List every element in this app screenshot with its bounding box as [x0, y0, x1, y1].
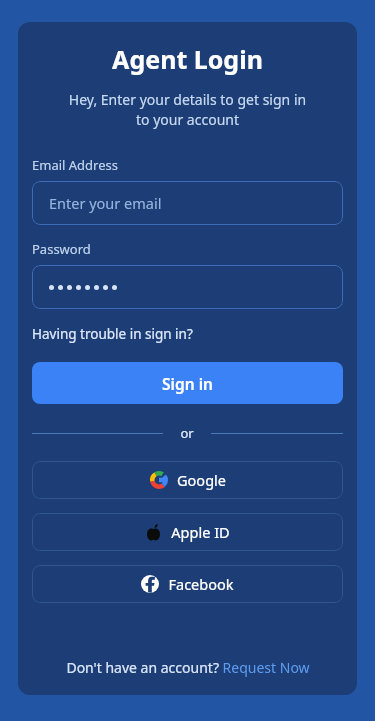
- staticText: Apple ID: [171, 522, 230, 542]
- button[interactable]: Facebook: [32, 565, 343, 603]
- button[interactable]: Enter your email: [32, 181, 343, 225]
- staticText: Sign in: [162, 373, 213, 394]
- staticText: Agent Login: [32, 42, 343, 76]
- button[interactable]: Having trouble in sign in?: [32, 325, 193, 343]
- button[interactable]: [32, 265, 343, 309]
- staticText: Google: [177, 470, 226, 490]
- button[interactable]: Sign in: [32, 362, 343, 404]
- button[interactable]: Google: [32, 461, 343, 499]
- staticText: Hey, Enter your details to get sign in t…: [32, 90, 343, 130]
- staticText: Enter your email: [49, 193, 162, 213]
- button[interactable]: Apple ID: [32, 513, 343, 551]
- staticText: Email Address: [32, 156, 343, 174]
- staticText: Having trouble in sign in?: [32, 325, 193, 343]
- staticText: Facebook: [168, 574, 234, 594]
- staticText: Don't have an account? Request Now: [66, 658, 310, 677]
- button[interactable]: Don't have an account? Request Now: [32, 658, 343, 677]
- staticText: or: [180, 424, 194, 442]
- staticText: Password: [32, 240, 343, 258]
